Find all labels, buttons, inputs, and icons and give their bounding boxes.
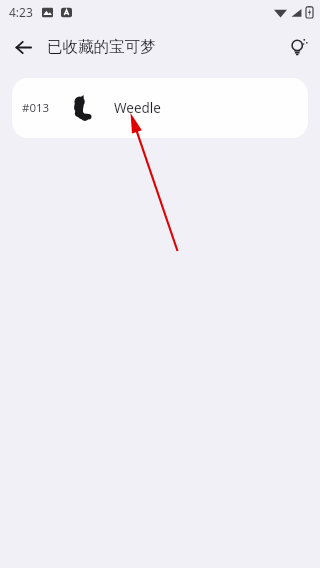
button[interactable]: 返回 bbox=[10, 34, 36, 60]
staticText: 4:23 bbox=[9, 4, 33, 20]
staticText: 已收藏的宝可梦 bbox=[47, 37, 156, 57]
button[interactable]: 切换主题 bbox=[284, 33, 312, 61]
staticText: #013 bbox=[22, 100, 50, 116]
staticText: Weedle bbox=[114, 99, 161, 117]
button[interactable]: #013 bbox=[12, 78, 308, 138]
